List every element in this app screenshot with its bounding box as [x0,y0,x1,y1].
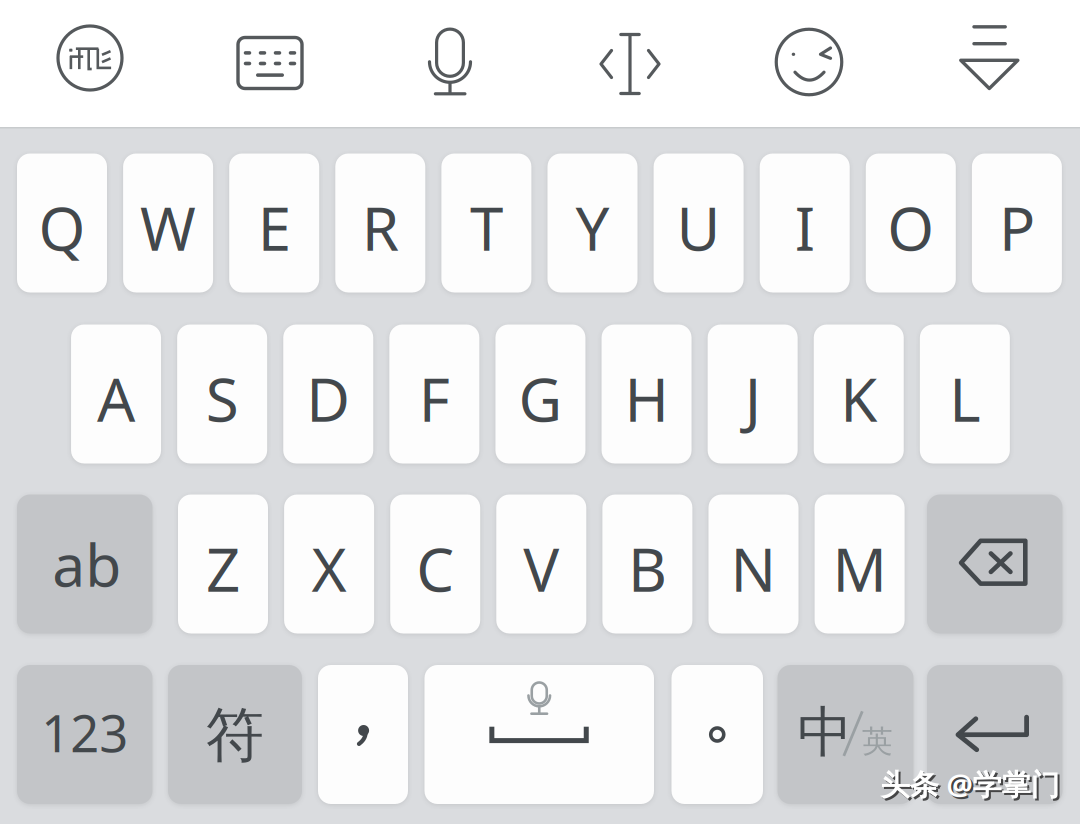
button[interactable]: 符 [168,665,302,804]
button[interactable]: Keyboard layout [215,6,325,118]
button[interactable]: G [495,324,585,463]
staticText: X [312,529,347,608]
button[interactable]: K [814,324,904,463]
staticText: Z [206,529,240,608]
button[interactable]: Emoji [754,6,864,118]
button[interactable]: Period [671,665,763,804]
button[interactable]: iFlytek input [35,6,145,118]
button[interactable]: Z [178,494,268,633]
button[interactable]: F [389,324,479,463]
button[interactable]: Move cursor [575,6,685,118]
staticText: R [362,188,399,267]
button[interactable]: A [71,324,161,463]
staticText: S [206,359,239,438]
button[interactable]: Space [424,665,654,804]
button[interactable]: S [177,324,267,463]
staticText: A [97,359,135,438]
staticText: 头条 @学掌门 [882,766,1061,805]
staticText: H [624,359,668,438]
staticText: O [887,188,934,267]
button[interactable]: N [708,494,798,633]
button[interactable]: R [335,153,425,292]
button[interactable]: Return [927,665,1062,804]
button[interactable]: Y [547,153,637,292]
staticText: B [628,529,667,608]
staticText: F [419,359,450,438]
staticText: T [470,188,503,267]
button[interactable]: H [601,324,691,463]
button[interactable]: 123 [17,665,152,804]
staticText: N [730,529,776,608]
staticText: C [416,529,454,608]
button[interactable]: X [284,494,374,633]
staticText: Q [38,188,85,267]
button[interactable]: L [920,324,1010,463]
button[interactable]: P [972,153,1062,292]
staticText: J [745,359,761,438]
staticText: 英 [862,723,893,760]
staticText: W [140,188,196,267]
staticText: I [795,188,815,267]
button[interactable]: Voice input [395,6,505,118]
button[interactable]: Q [17,153,107,292]
staticText: P [999,188,1035,267]
staticText: 头条 @学掌门 [880,764,1059,803]
staticText: D [306,359,350,438]
staticText: 中 [797,699,852,766]
button[interactable]: W [123,153,213,292]
button[interactable]: J [708,324,798,463]
button[interactable]: C [390,494,480,633]
staticText: G [518,359,562,438]
button[interactable]: D [283,324,373,463]
button[interactable]: M [815,494,905,633]
staticText: M [833,529,887,608]
button[interactable]: B [602,494,692,633]
button[interactable]: O [866,153,956,292]
staticText: E [258,188,291,267]
staticText: L [949,359,980,438]
button[interactable]: E [229,153,319,292]
button[interactable]: ab [17,494,152,633]
button[interactable]: U [654,153,744,292]
staticText: Y [575,188,609,267]
staticText: V [523,529,559,608]
button[interactable]: Hide keyboard [934,6,1044,118]
button[interactable]: Chinese / English [777,665,913,804]
staticText: 符 [205,699,264,772]
button[interactable]: Comma [318,665,408,804]
button[interactable]: Delete [927,494,1062,633]
staticText: ab [52,525,121,603]
button[interactable]: T [441,153,531,292]
staticText: U [677,188,721,267]
button[interactable]: V [496,494,586,633]
button[interactable]: I [760,153,850,292]
staticText: 123 [41,699,128,766]
staticText: K [840,359,877,438]
